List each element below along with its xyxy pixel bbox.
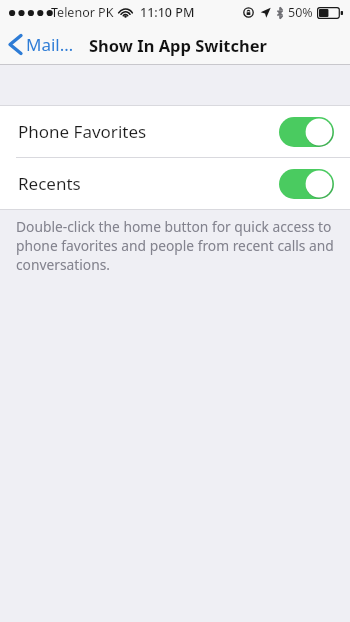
button[interactable]: Recents — [0, 158, 350, 209]
staticText: Telenor PK — [51, 4, 114, 21]
button[interactable]: Phone Favorites — [0, 106, 350, 157]
staticText: Phone Favorites — [18, 120, 147, 143]
button[interactable]: Toggle on — [279, 169, 334, 199]
button[interactable]: Toggle on — [279, 117, 334, 147]
staticText: Double-click the home button for quick a… — [16, 217, 338, 274]
other: Back to Mail — [9, 34, 22, 55]
staticText: 50% — [288, 4, 313, 21]
staticText: 11:10 PM — [140, 4, 195, 21]
button[interactable]: Back to Mail — [7, 29, 76, 60]
staticText: Show In App Switcher — [89, 34, 267, 56]
staticText: Recents — [18, 172, 81, 195]
staticText: Mail… — [26, 33, 74, 56]
